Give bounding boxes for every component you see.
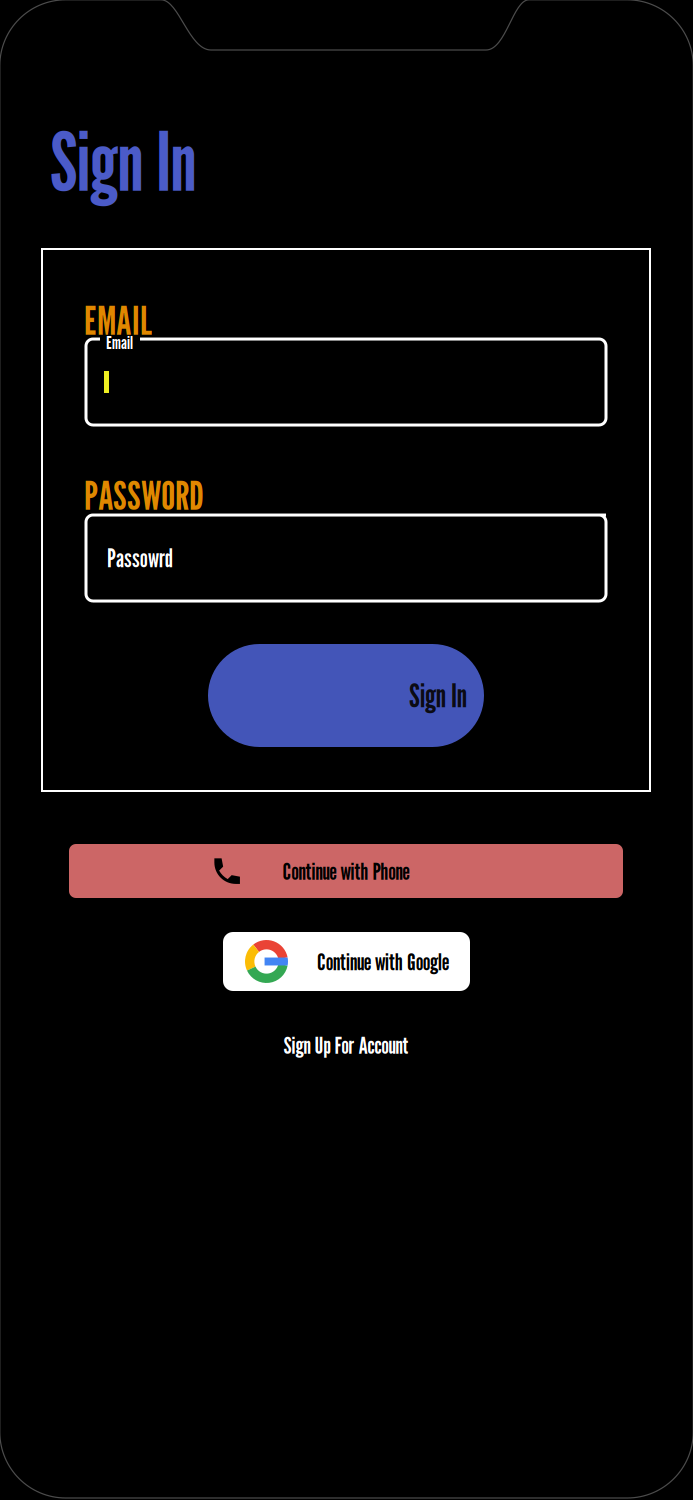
button[interactable]: Sign Up For Account: [266, 1030, 426, 1060]
staticText: Continue with Phone: [282, 857, 409, 885]
button[interactable]: Continue with Google: [223, 932, 470, 991]
staticText: Email: [106, 331, 133, 353]
staticText: Sign Up For Account: [283, 1031, 408, 1059]
button[interactable]: Sign In: [208, 644, 484, 747]
staticText: Sign In: [50, 112, 196, 210]
staticText: EMAIL: [84, 296, 152, 344]
staticText: PASSWORD: [84, 471, 204, 519]
staticText: Sign In: [409, 676, 467, 715]
button[interactable]: Continue with Phone: [69, 844, 623, 898]
staticText: Passowrd: [107, 543, 173, 573]
staticText: Continue with Google: [317, 947, 449, 976]
